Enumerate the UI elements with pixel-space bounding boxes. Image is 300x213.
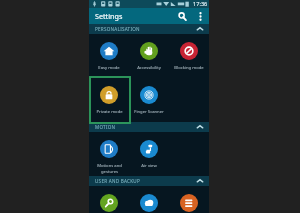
staticText: Settings: [95, 11, 123, 21]
button[interactable]: Accounts: [89, 186, 129, 213]
staticText: 17:36: [193, 0, 208, 8]
staticText: MOTION: [95, 124, 116, 130]
button[interactable]: Search: [175, 9, 189, 23]
staticText: USER AND BACKUP: [95, 178, 140, 184]
staticText: Accessibility: [137, 65, 161, 71]
button[interactable]: Finger Scanner: [129, 78, 169, 122]
button[interactable]: Private mode: [89, 78, 129, 122]
button[interactable]: Motions and gestures: [89, 132, 129, 176]
button[interactable]: Blocking mode: [169, 34, 209, 78]
staticText: Private mode: [96, 109, 123, 115]
button[interactable]: Air view: [129, 132, 169, 176]
staticText: Blocking mode: [174, 65, 204, 71]
button[interactable]: More options: [194, 10, 206, 22]
button[interactable]: PERSONALISATION: [89, 24, 209, 34]
button[interactable]: MOTION: [89, 122, 209, 132]
staticText: Air view: [141, 163, 157, 169]
button[interactable]: Accessibility: [129, 34, 169, 78]
staticText: PERSONALISATION: [95, 26, 140, 32]
button[interactable]: USER AND BACKUP: [89, 176, 209, 186]
button[interactable]: Easy mode: [89, 34, 129, 78]
button[interactable]: Cloud: [129, 186, 169, 213]
staticText: Finger Scanner: [134, 109, 164, 115]
button[interactable]: Backup: [169, 186, 209, 213]
staticText: Motions and gestures: [97, 163, 122, 174]
staticText: Easy mode: [98, 65, 120, 71]
